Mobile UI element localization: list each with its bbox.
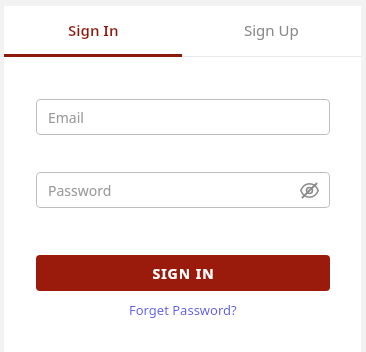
staticText: Sign Up — [244, 20, 299, 40]
staticText: Sign In — [68, 20, 119, 40]
staticText: Email — [48, 108, 84, 127]
button[interactable]: Sign In — [4, 6, 182, 54]
button[interactable]: Password — [36, 172, 330, 208]
button[interactable]: Show password — [296, 177, 322, 203]
staticText: SIGN IN — [152, 264, 215, 283]
button[interactable]: Email — [36, 99, 330, 135]
staticText: Forget Password? — [129, 301, 237, 319]
button[interactable]: SIGN IN — [36, 255, 330, 291]
button[interactable]: Forget Password? — [125, 299, 241, 321]
button[interactable]: Sign Up — [182, 6, 361, 54]
staticText: Password — [48, 181, 112, 200]
